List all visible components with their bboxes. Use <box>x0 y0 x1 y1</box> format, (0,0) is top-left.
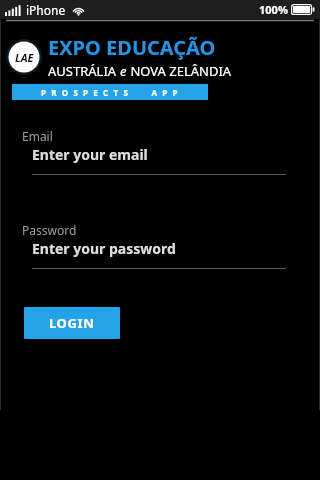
staticText: AUSTRÁLIA <box>48 62 120 80</box>
staticText: P R O S P E C T S A P P <box>41 87 180 98</box>
staticText: Password <box>22 222 77 238</box>
staticText: EXPO EDUCAÇÃO <box>48 34 216 61</box>
staticText: NOVA ZELÂNDIA <box>127 62 232 80</box>
staticText: e <box>120 62 127 80</box>
staticText: 100% <box>259 2 288 17</box>
staticText: LAE <box>15 50 34 65</box>
staticText: LOGIN <box>49 314 95 332</box>
staticText: Email <box>22 128 53 144</box>
button[interactable]: Password <box>0 222 320 269</box>
staticText: iPhone <box>26 2 66 18</box>
button[interactable]: Email <box>0 128 320 175</box>
staticText: Enter your password <box>32 239 176 258</box>
staticText: Enter your email <box>32 145 148 164</box>
button[interactable]: Login <box>24 307 120 339</box>
